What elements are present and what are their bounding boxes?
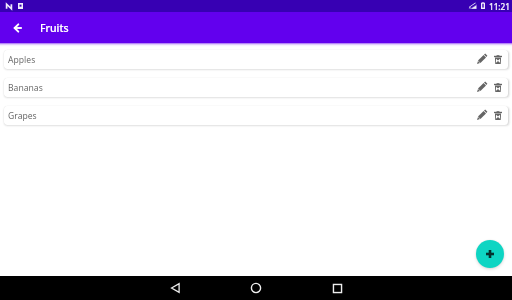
button[interactable]: Apples (4, 50, 508, 69)
button[interactable]: Delete Grapes (491, 108, 505, 122)
button[interactable]: Back (10, 20, 25, 35)
staticText: 11:21 (489, 1, 510, 12)
button[interactable]: Delete Bananas (491, 80, 505, 94)
button[interactable]: Edit Apples (475, 52, 489, 66)
staticText: Bananas (8, 82, 43, 94)
button[interactable]: Edit Grapes (475, 108, 489, 122)
button[interactable]: Recents (327, 278, 347, 298)
staticText: Fruits (40, 21, 69, 35)
button[interactable]: Bananas (4, 78, 508, 97)
button[interactable]: Home (246, 278, 266, 298)
button[interactable]: Back (165, 278, 185, 298)
button[interactable]: Add (476, 240, 504, 268)
staticText: Apples (8, 54, 36, 66)
button[interactable]: Edit Bananas (475, 80, 489, 94)
staticText: Grapes (8, 110, 37, 122)
button[interactable]: Grapes (4, 106, 508, 125)
button[interactable]: Delete Apples (491, 52, 505, 66)
